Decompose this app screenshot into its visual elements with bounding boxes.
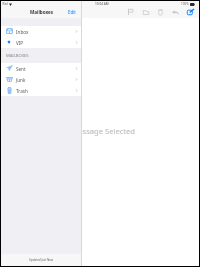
staticText: VIP [16, 40, 24, 46]
button[interactable]: Reply [168, 6, 183, 18]
staticText: Trash [16, 88, 28, 94]
staticText: No Message Selected [59, 126, 136, 136]
staticText: Updated Just Now [29, 258, 54, 262]
staticText: 10:04 AM [95, 2, 109, 6]
staticText: Junk [16, 77, 26, 83]
staticText: 100% [181, 2, 189, 6]
button[interactable]: Move to folder [138, 6, 153, 18]
staticText: iPad [2, 2, 8, 6]
button[interactable]: Edit [65, 7, 82, 17]
button[interactable]: Junk [1, 74, 82, 85]
button[interactable]: VIP [1, 37, 82, 48]
button[interactable]: Trash [1, 85, 82, 96]
staticText: Sent [16, 66, 26, 72]
button[interactable]: Delete [153, 6, 168, 18]
button[interactable]: Sent [1, 63, 82, 74]
button[interactable]: Compose [183, 6, 198, 18]
staticText: MAILBOXES [6, 53, 29, 59]
staticText: Inbox [16, 29, 29, 35]
staticText: Mailboxes [30, 9, 54, 15]
staticText: Edit [68, 9, 76, 15]
button[interactable]: Inbox [1, 26, 82, 37]
button[interactable]: Flag [123, 6, 138, 18]
